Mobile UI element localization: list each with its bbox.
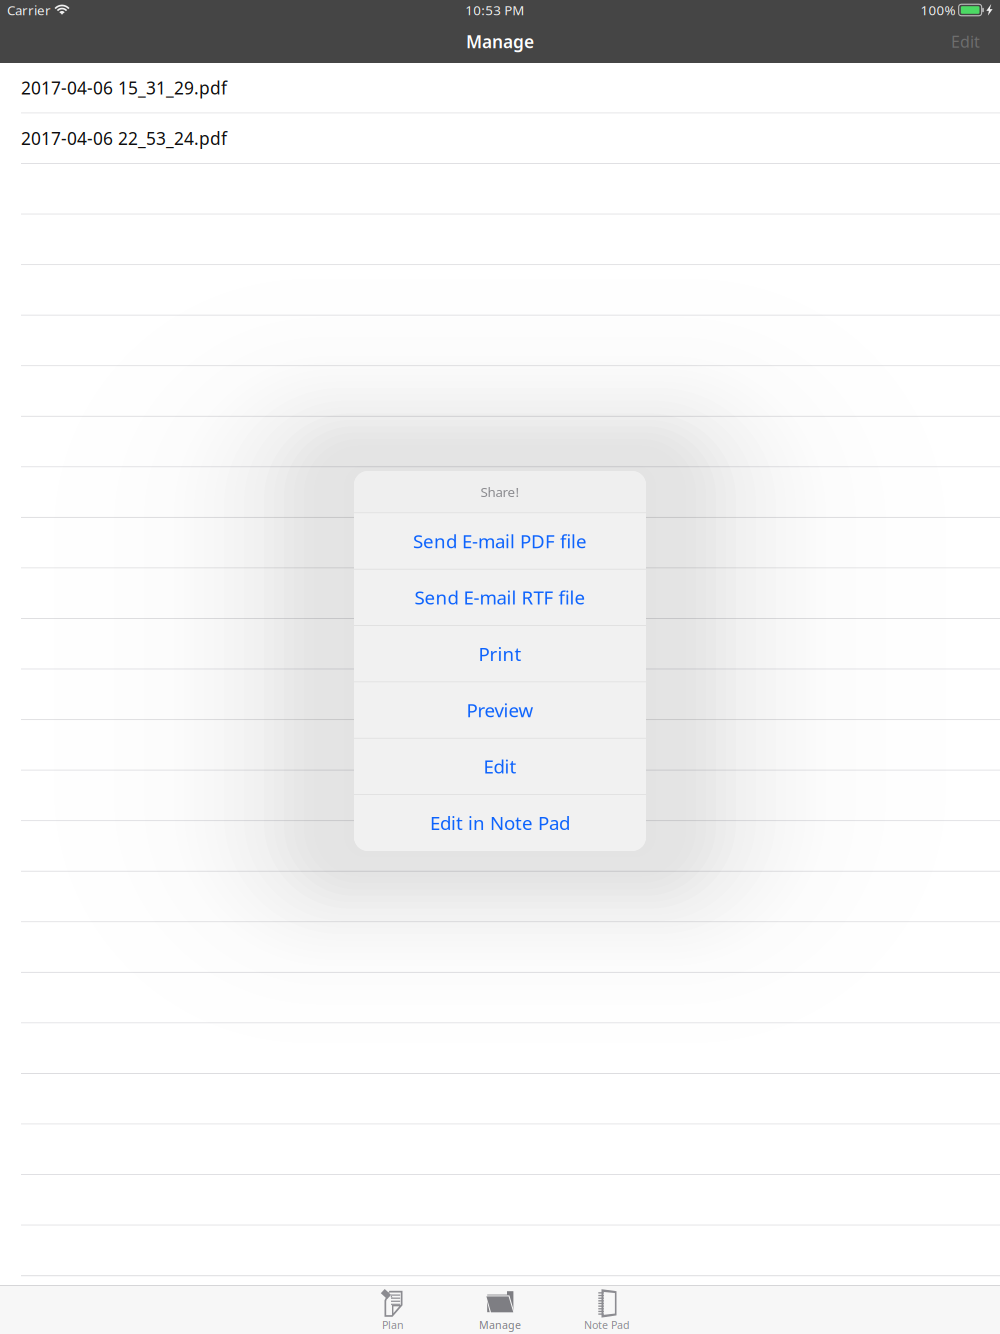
staticText: Edit: [951, 31, 980, 52]
button[interactable]: [0, 518, 1000, 568]
staticText: 10:53 PM: [465, 1, 524, 19]
button[interactable]: [0, 467, 1000, 518]
button[interactable]: Edit: [931, 20, 1000, 63]
staticText: Note Pad: [584, 1318, 630, 1332]
button[interactable]: [0, 720, 1000, 771]
button[interactable]: Send E-mail RTF file: [354, 569, 646, 625]
staticText: 2017-04-06 22_53_24.pdf: [21, 127, 227, 150]
button[interactable]: Send E-mail PDF file: [354, 512, 646, 569]
button[interactable]: [0, 366, 1000, 417]
staticText: Send E-mail RTF file: [414, 585, 585, 610]
button[interactable]: [0, 417, 1000, 467]
button[interactable]: [0, 1226, 1000, 1276]
button[interactable]: [0, 1023, 1000, 1074]
staticText: Manage: [479, 1318, 521, 1332]
staticText: 2017-04-06 15_31_29.pdf: [21, 76, 227, 99]
button[interactable]: Note Pad: [553, 1286, 660, 1334]
button[interactable]: [0, 922, 1000, 973]
button[interactable]: Edit in Note Pad: [354, 794, 646, 851]
button[interactable]: Plan: [339, 1286, 446, 1334]
button[interactable]: [0, 215, 1000, 265]
button[interactable]: [0, 771, 1000, 821]
button[interactable]: 2017-04-06 22_53_24.pdf: [0, 113, 1000, 164]
staticText: 100%: [920, 1, 955, 19]
staticText: Share!: [480, 483, 519, 501]
button[interactable]: [0, 619, 1000, 670]
button[interactable]: [0, 872, 1000, 922]
staticText: Carrier: [7, 1, 51, 19]
staticText: Edit in Note Pad: [430, 810, 570, 835]
button[interactable]: [0, 316, 1000, 366]
button[interactable]: Edit: [354, 738, 646, 794]
staticText: Manage: [466, 30, 534, 53]
staticText: Preview: [466, 698, 533, 722]
staticText: Print: [478, 641, 521, 666]
button[interactable]: Print: [354, 625, 646, 681]
button[interactable]: [0, 1124, 1000, 1175]
button[interactable]: [0, 821, 1000, 872]
button[interactable]: Manage: [446, 1286, 553, 1334]
button[interactable]: Preview: [354, 681, 646, 738]
button[interactable]: [0, 568, 1000, 619]
button[interactable]: 2017-04-06 15_31_29.pdf: [0, 63, 1000, 113]
staticText: Send E-mail PDF file: [413, 529, 587, 553]
button[interactable]: [0, 670, 1000, 720]
staticText: Edit: [483, 754, 516, 779]
staticText: Plan: [382, 1318, 404, 1332]
